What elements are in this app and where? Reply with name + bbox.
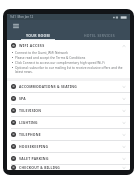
staticText: SPA (19, 96, 26, 101)
staticText: WIFI ACCESS (19, 43, 45, 48)
staticText: TELEPHONE (19, 132, 41, 137)
staticText: 9:41 Mon Jan 12 (10, 15, 34, 19)
staticText: Connect to the Guest_WiFi Network (15, 51, 68, 55)
staticText: Please read and accept the Terms & Condi… (15, 56, 86, 60)
button[interactable]: ACCOMMODATIONS & SEATING (7, 81, 130, 92)
staticText: YOUR ROOM (26, 33, 50, 38)
staticText: TELEVISION (19, 108, 42, 113)
button[interactable]: SPA (7, 93, 130, 104)
staticText: HOUSEKEEPING (19, 144, 49, 149)
button[interactable]: HOUSEKEEPING (7, 141, 130, 152)
button[interactable]: WIFI ACCESS (7, 40, 130, 78)
button[interactable]: HOTEL SERVICES (68, 31, 130, 40)
staticText: ACCOMMODATIONS & SEATING (19, 84, 78, 89)
staticText: CHECKOUT & BILLING (19, 165, 60, 170)
button[interactable]: CHECKOUT & BILLING (7, 165, 130, 170)
button[interactable]: Menu (11, 21, 20, 30)
button[interactable]: LIGHTING (7, 117, 130, 128)
button[interactable]: TELEPHONE (7, 129, 130, 140)
staticText: HOTEL SERVICES (84, 33, 115, 38)
button[interactable]: TELEVISION (7, 105, 130, 116)
staticText: VALET PARKING (19, 156, 49, 161)
staticText: Click Connect to access our complimentar… (15, 61, 105, 65)
staticText: LIGHTING (19, 120, 38, 125)
button[interactable]: VALET PARKING (7, 153, 130, 164)
staticText: Optional: subscribe to our mailing list … (15, 66, 126, 74)
button[interactable]: YOUR ROOM (7, 31, 68, 40)
